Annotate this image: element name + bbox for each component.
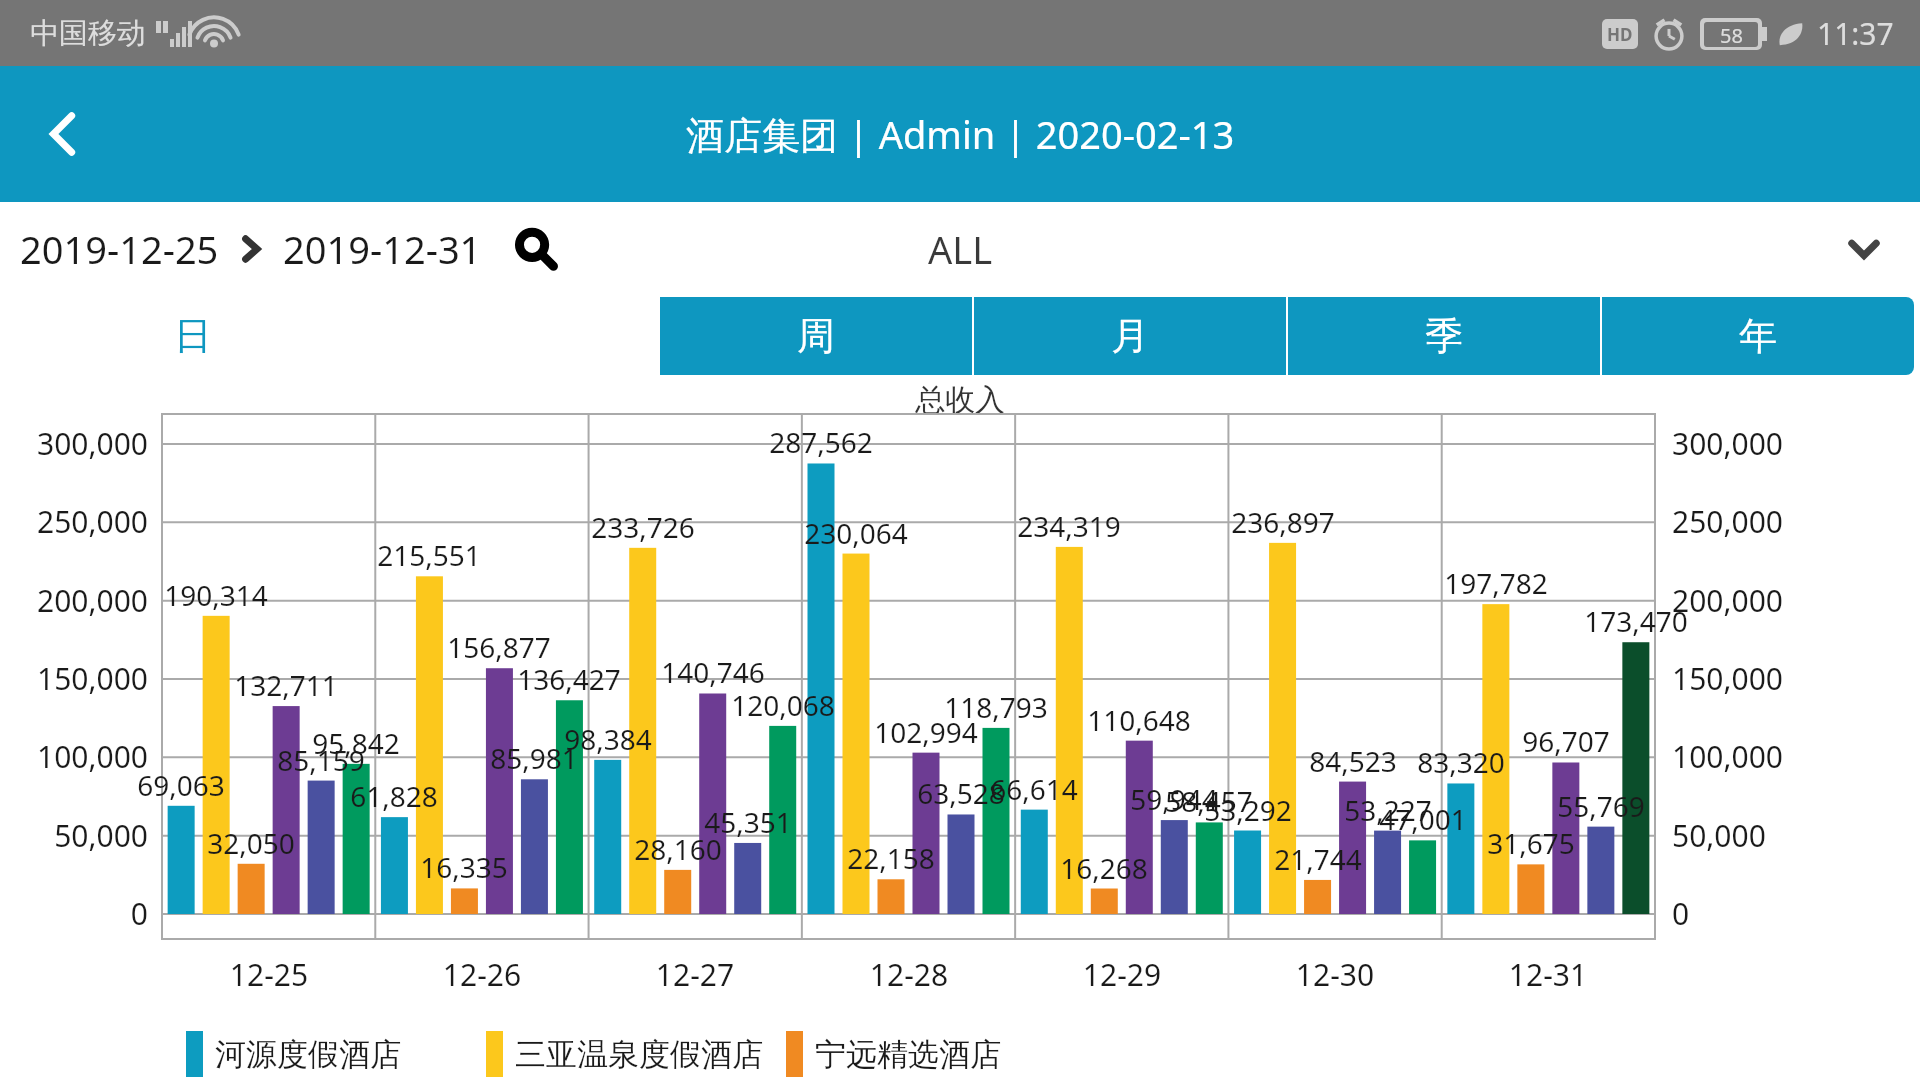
button[interactable]: 月	[974, 297, 1286, 375]
staticText: 0	[1672, 893, 1872, 934]
staticText: 28,160	[608, 830, 748, 868]
button[interactable]: 宁远精选酒店	[786, 1028, 1086, 1080]
staticText: 月	[1111, 312, 1149, 360]
button[interactable]: Search	[504, 218, 566, 280]
staticText: 31,675	[1461, 824, 1601, 862]
button[interactable]: 河源度假酒店	[186, 1028, 486, 1080]
staticText: 98,384	[538, 720, 678, 758]
staticText: 250,000	[1672, 501, 1872, 542]
staticText: 12-25	[189, 954, 349, 995]
staticText: 136,427	[499, 660, 639, 698]
staticText: 150,000	[0, 658, 148, 699]
staticText: HD	[1607, 23, 1633, 46]
staticText: 95,842	[286, 724, 426, 762]
staticText: 287,562	[751, 423, 891, 461]
staticText: 三亚温泉度假酒店	[515, 1035, 763, 1074]
staticText: 83,320	[1391, 743, 1531, 781]
staticText: 0	[0, 893, 148, 934]
staticText: 132,711	[216, 666, 356, 704]
staticText: 100,000	[1672, 736, 1872, 777]
staticText: 215,551	[359, 536, 499, 574]
staticText: 102,994	[856, 713, 996, 751]
staticText: 236,897	[1213, 503, 1353, 541]
staticText: 21,744	[1248, 840, 1388, 878]
button[interactable]: 周	[660, 297, 972, 375]
button[interactable]: Expand	[1834, 219, 1894, 279]
staticText: 22,158	[821, 839, 961, 877]
staticText: 50,000	[0, 815, 148, 856]
staticText: 250,000	[0, 501, 148, 542]
staticText: 118,793	[926, 688, 1066, 726]
staticText: 84,523	[1283, 742, 1423, 780]
staticText: 季	[1425, 312, 1463, 360]
staticText: 45,351	[678, 803, 818, 841]
staticText: 230,064	[786, 514, 926, 552]
staticText: 年	[1739, 312, 1777, 360]
staticText: 85,981	[464, 739, 604, 777]
staticText: 12-26	[402, 954, 562, 995]
staticText: 58	[1720, 22, 1743, 47]
staticText: 200,000	[1672, 580, 1872, 621]
staticText: 53,292	[1178, 791, 1318, 829]
button[interactable]: Range	[223, 221, 279, 277]
staticText: 16,268	[1034, 849, 1174, 887]
staticText: 300,000	[0, 423, 148, 464]
staticText: 69,063	[111, 766, 251, 804]
button[interactable]: 三亚温泉度假酒店	[486, 1028, 786, 1080]
button[interactable]: Back	[28, 98, 100, 170]
staticText: 55,769	[1531, 787, 1671, 825]
button[interactable]: 2019-12-25	[16, 223, 223, 275]
button[interactable]: 2019-12-31	[279, 223, 486, 275]
staticText: 63,528	[891, 774, 1031, 812]
staticText: 中国移动	[30, 15, 146, 52]
staticText: 234,319	[999, 507, 1139, 545]
staticText: 197,782	[1426, 564, 1566, 602]
staticText: 12-28	[829, 954, 989, 995]
staticText: 110,648	[1069, 701, 1209, 739]
staticText: 59,944	[1104, 780, 1244, 818]
staticText: 酒店集团 | Admin | 2020-02-13	[686, 108, 1235, 160]
staticText: 12-30	[1255, 954, 1415, 995]
button[interactable]: 季	[1288, 297, 1600, 375]
button[interactable]: 年	[1602, 297, 1914, 375]
staticText: ALL	[928, 223, 993, 275]
staticText: 300,000	[1672, 423, 1872, 464]
staticText: 32,050	[181, 824, 321, 862]
staticText: 173,470	[1566, 602, 1706, 640]
staticText: 58,457	[1139, 782, 1279, 820]
button[interactable]: 日	[0, 296, 386, 376]
staticText: 66,614	[964, 770, 1104, 808]
staticText: 156,877	[429, 628, 569, 666]
staticText: 12-31	[1468, 954, 1628, 995]
staticText: 周	[797, 312, 835, 360]
staticText: 233,726	[573, 508, 713, 546]
staticText: 61,828	[324, 777, 464, 815]
staticText: 120,068	[713, 686, 853, 724]
staticText: 190,314	[146, 576, 286, 614]
staticText: 200,000	[0, 580, 148, 621]
staticText: 总收入	[915, 381, 1005, 419]
staticText: 50,000	[1672, 815, 1872, 856]
staticText: 53,227	[1318, 791, 1458, 829]
staticText: 100,000	[0, 736, 148, 777]
staticText: 12-27	[615, 954, 775, 995]
staticText: 2019-12-31	[283, 223, 482, 275]
staticText: 11:37	[1817, 13, 1894, 54]
staticText: 宁远精选酒店	[815, 1035, 1001, 1074]
staticText: 16,335	[394, 848, 534, 886]
staticText: 150,000	[1672, 658, 1872, 699]
staticText: 140,746	[643, 653, 783, 691]
staticText: 47,001	[1353, 800, 1493, 838]
staticText: 12-29	[1042, 954, 1202, 995]
staticText: 河源度假酒店	[215, 1035, 401, 1074]
staticText: 日	[174, 312, 212, 360]
staticText: 85,159	[251, 741, 391, 779]
staticText: 96,707	[1496, 722, 1636, 760]
staticText: 2019-12-25	[20, 223, 219, 275]
